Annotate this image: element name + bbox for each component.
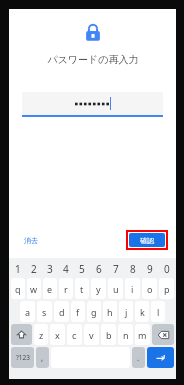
staticText: ?123 — [16, 353, 30, 362]
staticText: e — [47, 283, 53, 295]
button[interactable]: w — [27, 278, 41, 299]
button[interactable]: Next — [147, 347, 174, 368]
staticText: u — [113, 283, 119, 295]
button[interactable] — [22, 92, 163, 117]
staticText: k — [140, 306, 145, 318]
staticText: p — [164, 283, 170, 295]
button[interactable]: c — [67, 324, 82, 345]
button[interactable]: h — [103, 301, 117, 322]
button[interactable]: 4 — [58, 260, 74, 277]
button[interactable]: a — [20, 301, 35, 322]
button[interactable]: l — [151, 301, 165, 322]
button[interactable]: m — [135, 324, 150, 345]
button[interactable]: 消去 — [22, 233, 40, 248]
staticText: n — [123, 329, 129, 341]
button[interactable]: 0 — [158, 260, 175, 277]
button[interactable]: f — [71, 301, 85, 322]
button[interactable]: s — [37, 301, 52, 322]
staticText: 2 — [31, 262, 37, 276]
staticText: a — [25, 306, 31, 318]
button[interactable]: o — [142, 278, 157, 299]
button[interactable]: 3 — [42, 260, 58, 277]
button[interactable]: Backspace — [152, 324, 174, 345]
button[interactable]: 1 — [10, 260, 26, 277]
button[interactable]: u — [108, 278, 123, 299]
staticText: パスワードの再入力 — [47, 53, 139, 66]
button[interactable]: z — [34, 324, 48, 345]
button[interactable]: Shift — [11, 324, 32, 345]
staticText: l — [157, 306, 160, 318]
staticText: , — [41, 352, 44, 363]
staticText: j — [125, 306, 128, 318]
button[interactable]: g — [87, 301, 101, 322]
staticText: g — [91, 306, 97, 318]
button[interactable]: d — [54, 301, 69, 322]
staticText: f — [76, 306, 80, 318]
button[interactable]: 6 — [90, 260, 107, 277]
button[interactable]: 確認 — [129, 233, 165, 247]
button[interactable]: e — [43, 278, 57, 299]
staticText: d — [59, 306, 65, 318]
staticText: z — [39, 329, 44, 341]
staticText: 確認 — [140, 236, 154, 245]
staticText: i — [131, 283, 134, 295]
staticText: . — [137, 352, 140, 363]
button[interactable]: v — [84, 324, 99, 345]
staticText: c — [72, 329, 77, 341]
staticText: v — [89, 329, 94, 341]
button[interactable]: y — [91, 278, 106, 299]
button[interactable]: k — [135, 301, 149, 322]
staticText: y — [96, 283, 101, 295]
button[interactable]: 2 — [26, 260, 42, 277]
staticText: 5 — [79, 262, 85, 276]
button[interactable]: 7 — [107, 260, 124, 277]
staticText: t — [80, 283, 84, 295]
staticText: h — [107, 306, 113, 318]
staticText: q — [15, 283, 21, 295]
staticText: 消去 — [24, 236, 38, 245]
staticText: 7 — [113, 262, 119, 276]
button[interactable]: x — [50, 324, 65, 345]
staticText: 1 — [15, 262, 21, 276]
button[interactable]: , — [36, 347, 49, 368]
button[interactable]: ?123 — [11, 347, 34, 368]
button[interactable]: p — [159, 278, 174, 299]
staticText: 4 — [63, 262, 69, 276]
staticText: 8 — [130, 262, 136, 276]
other: Lock — [85, 23, 101, 42]
staticText: m — [138, 329, 147, 341]
button[interactable]: t — [75, 278, 89, 299]
staticText: 3 — [47, 262, 53, 276]
staticText: 0 — [164, 262, 170, 276]
button[interactable]: 5 — [74, 260, 90, 277]
button[interactable]: q — [11, 278, 25, 299]
staticText: b — [106, 329, 112, 341]
staticText: o — [147, 283, 153, 295]
staticText: s — [42, 306, 47, 318]
button[interactable]: i — [125, 278, 140, 299]
button[interactable]: 9 — [141, 260, 158, 277]
staticText: 9 — [147, 262, 153, 276]
staticText: 6 — [96, 262, 102, 276]
staticText: r — [64, 283, 68, 295]
button[interactable]: . — [132, 347, 145, 368]
staticText: w — [30, 283, 38, 295]
button[interactable]: r — [59, 278, 73, 299]
button[interactable]: 8 — [124, 260, 141, 277]
button[interactable]: n — [118, 324, 133, 345]
button[interactable]: b — [101, 324, 116, 345]
staticText: x — [55, 329, 60, 341]
button[interactable]: j — [119, 301, 133, 322]
